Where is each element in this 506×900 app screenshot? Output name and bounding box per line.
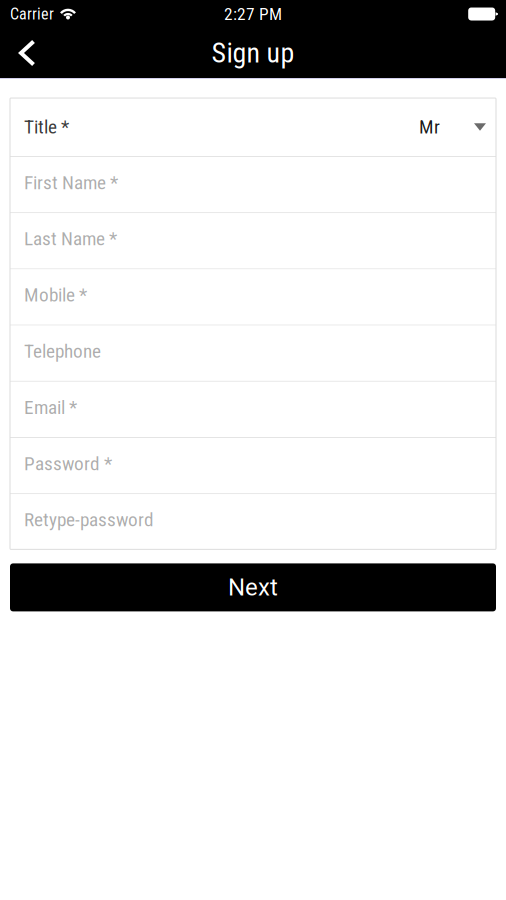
staticText: Password * (24, 452, 112, 475)
button[interactable]: Telephone (10, 326, 496, 381)
button[interactable]: Title * (10, 98, 496, 156)
button[interactable]: Retype-password (10, 494, 496, 549)
staticText: Email * (24, 396, 77, 419)
button[interactable]: Password * (10, 438, 496, 493)
staticText: Last Name * (24, 227, 117, 250)
button[interactable]: Next (10, 563, 496, 611)
button[interactable]: Email * (10, 382, 496, 437)
button[interactable]: Last Name * (10, 213, 496, 268)
button[interactable]: Mobile * (10, 269, 496, 325)
staticText: Next (228, 573, 278, 601)
staticText: Mr (419, 116, 440, 138)
staticText: Retype-password (24, 509, 154, 531)
staticText: Title * (24, 116, 69, 138)
staticText: Sign up (211, 37, 294, 69)
staticText: Carrier (10, 5, 54, 23)
staticText: Mobile * (24, 284, 87, 306)
staticText: Telephone (24, 340, 101, 362)
button[interactable]: Back (0, 28, 54, 78)
button[interactable]: First Name * (10, 157, 496, 212)
staticText: First Name * (24, 171, 118, 194)
staticText: 2:27 PM (224, 4, 282, 24)
